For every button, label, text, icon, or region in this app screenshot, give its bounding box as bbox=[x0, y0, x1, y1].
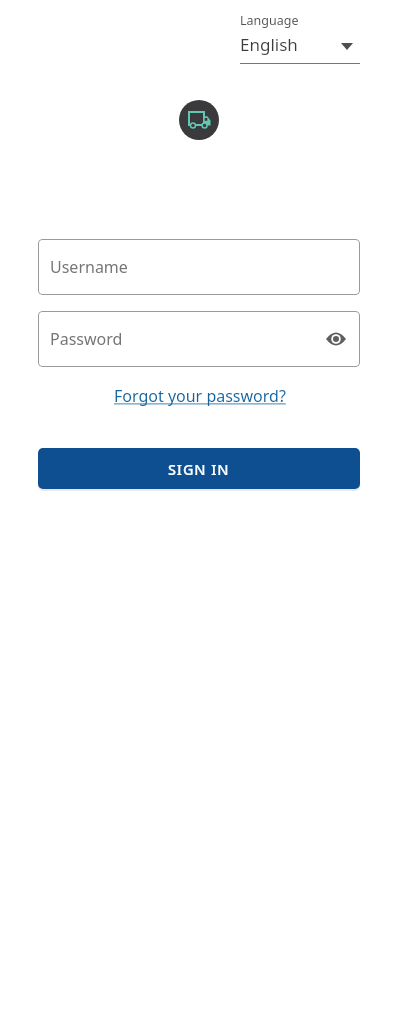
staticText: Password bbox=[50, 328, 123, 350]
staticText: Language bbox=[240, 12, 299, 29]
button[interactable]: Language bbox=[240, 12, 360, 64]
button[interactable] bbox=[326, 331, 346, 347]
staticText: SIGN IN bbox=[168, 459, 230, 479]
button[interactable]: Forgot your password? bbox=[114, 385, 286, 407]
staticText: Forgot your password? bbox=[114, 385, 286, 407]
button[interactable]: SIGN IN bbox=[38, 448, 360, 489]
button[interactable]: Username bbox=[38, 239, 360, 295]
staticText: Username bbox=[50, 256, 128, 278]
button[interactable]: Password bbox=[38, 311, 360, 367]
staticText: English bbox=[240, 33, 298, 56]
